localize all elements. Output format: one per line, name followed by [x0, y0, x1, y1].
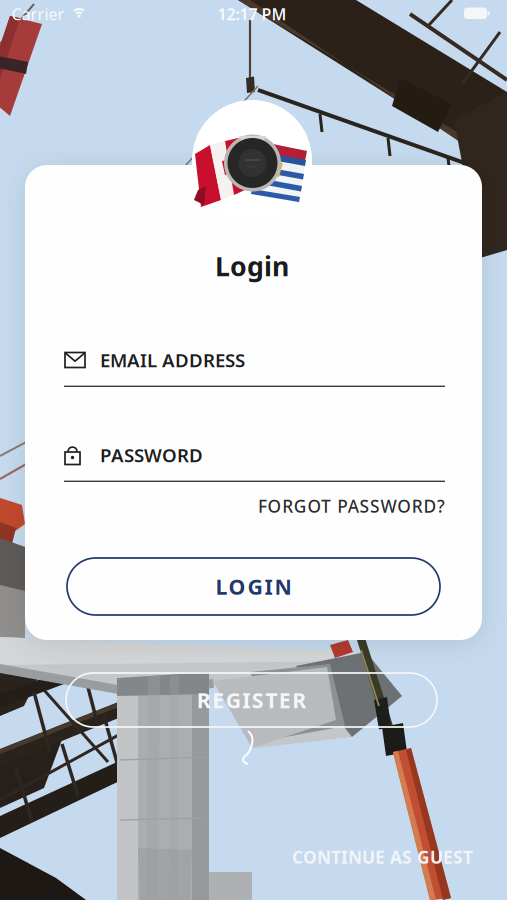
button[interactable]: REGISTER [66, 673, 437, 727]
button[interactable]: LOGIN [67, 558, 440, 615]
staticText: Carrier [11, 3, 64, 25]
button[interactable]: CONTINUE AS GUEST [173, 845, 473, 868]
staticText: REGISTER [197, 686, 306, 714]
staticText: LOGIN [215, 572, 291, 601]
staticText: 12:17 PM [217, 3, 286, 25]
staticText: EMAIL ADDRESS [100, 348, 245, 372]
staticText: FORGOT PASSWORD? [258, 494, 445, 517]
button[interactable]: FORGOT PASSWORD? [64, 494, 445, 517]
staticText: PASSWORD [100, 443, 203, 467]
staticText: CONTINUE AS GUEST [292, 845, 473, 868]
staticText: Login [215, 248, 289, 284]
button[interactable]: PASSWORD [64, 442, 445, 482]
button[interactable]: EMAIL ADDRESS [64, 347, 445, 387]
